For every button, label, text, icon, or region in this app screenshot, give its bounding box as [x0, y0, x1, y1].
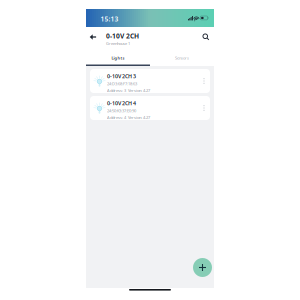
staticText: 0-10V 2CH 4 — [107, 100, 136, 107]
staticText: 0-10V 2CH 3 — [107, 73, 136, 80]
button[interactable]: Sensors — [150, 51, 214, 65]
button[interactable]: Back — [85, 28, 101, 46]
staticText: Address: 3 Version: 4.27 — [107, 88, 150, 93]
staticText: 0-10V 2CH — [106, 31, 139, 40]
staticText: 15:13 — [100, 14, 118, 23]
button[interactable]: 0-10V 2CH 4 — [90, 96, 210, 120]
staticText: Lights — [111, 55, 124, 61]
button[interactable]: Lights — [86, 51, 150, 65]
button[interactable]: Add device — [193, 258, 212, 277]
staticText: 24:D3:68:F7:18:63 — [107, 81, 137, 86]
button[interactable]: 0-10V 2CH 3 — [90, 69, 210, 93]
button[interactable]: Search — [198, 28, 214, 46]
staticText: Sensors — [175, 55, 189, 61]
staticText: 24:50:K3:37:E0:90 — [107, 108, 136, 113]
staticText: Address: 4 Version: 4.27 — [107, 115, 150, 120]
staticText: Greenhouse 1 — [106, 41, 130, 46]
